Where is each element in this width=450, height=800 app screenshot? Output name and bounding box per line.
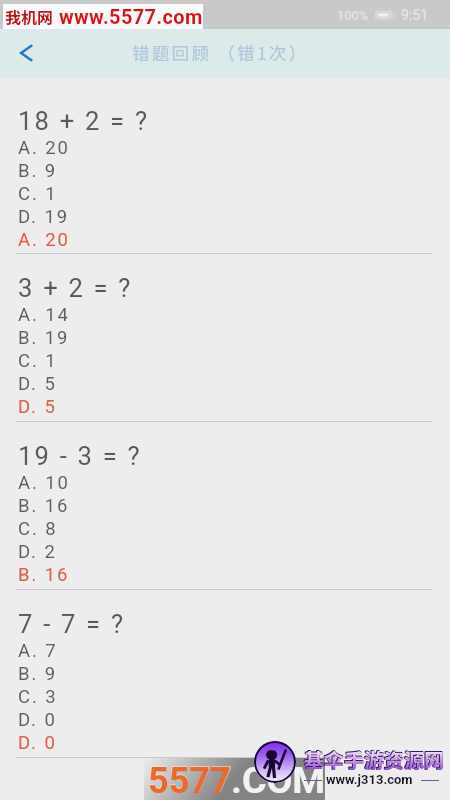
staticText: A. 20 [18, 137, 70, 159]
staticText: B. 9 [18, 663, 57, 685]
staticText: D. 0 [18, 732, 57, 754]
button[interactable]: 3 + 2 = ? [0, 254, 450, 422]
staticText: A. 10 [18, 472, 70, 494]
staticText: C. 3 [18, 686, 58, 708]
staticText: D. 19 [18, 206, 69, 228]
button[interactable]: 7 - 7 = ? [0, 590, 450, 758]
button[interactable]: 19 - 3 = ? [0, 422, 450, 590]
staticText: A. 7 [18, 640, 58, 662]
staticText: 基伞手游资源网 [304, 745, 444, 774]
staticText: D. 2 [18, 541, 57, 563]
staticText: www.j313.com [326, 772, 413, 787]
staticText: 基伞手游资源网 [303, 744, 443, 773]
staticText: 9:51 [401, 7, 428, 23]
staticText: 基伞手游资源网 [304, 745, 444, 774]
button[interactable]: Back [6, 32, 48, 74]
staticText: A. 14 [18, 304, 70, 326]
staticText: C. 1 [18, 350, 58, 372]
staticText: C. 1 [18, 183, 58, 205]
staticText: .COM [231, 758, 326, 800]
staticText: 3 + 2 = ? [18, 273, 133, 303]
staticText: B. 16 [18, 564, 70, 586]
staticText: 基伞手游资源网 [304, 744, 444, 773]
button[interactable]: 18 + 2 = ? [0, 78, 450, 254]
staticText: 100% [337, 8, 369, 23]
staticText: 5577 [147, 758, 232, 800]
staticText: D. 0 [18, 709, 57, 731]
staticText: B. 9 [18, 160, 57, 182]
staticText: A. 20 [18, 229, 70, 251]
staticText: 5577 [148, 760, 231, 800]
staticText: 7 - 7 = ? [18, 609, 126, 639]
staticText: B. 16 [18, 495, 70, 517]
staticText: 18 + 2 = ? [18, 106, 150, 136]
staticText: C. 8 [18, 518, 58, 540]
staticText: D. 5 [18, 396, 57, 418]
staticText: 我机网 [5, 5, 54, 28]
staticText: 错题回顾 （错1次） [132, 40, 309, 65]
staticText: 19 - 3 = ? [18, 441, 142, 471]
staticText: 基伞手游资源网 [303, 745, 443, 774]
staticText: www.5577.com [59, 5, 203, 28]
staticText: D. 5 [18, 373, 57, 395]
staticText: B. 19 [18, 327, 70, 349]
